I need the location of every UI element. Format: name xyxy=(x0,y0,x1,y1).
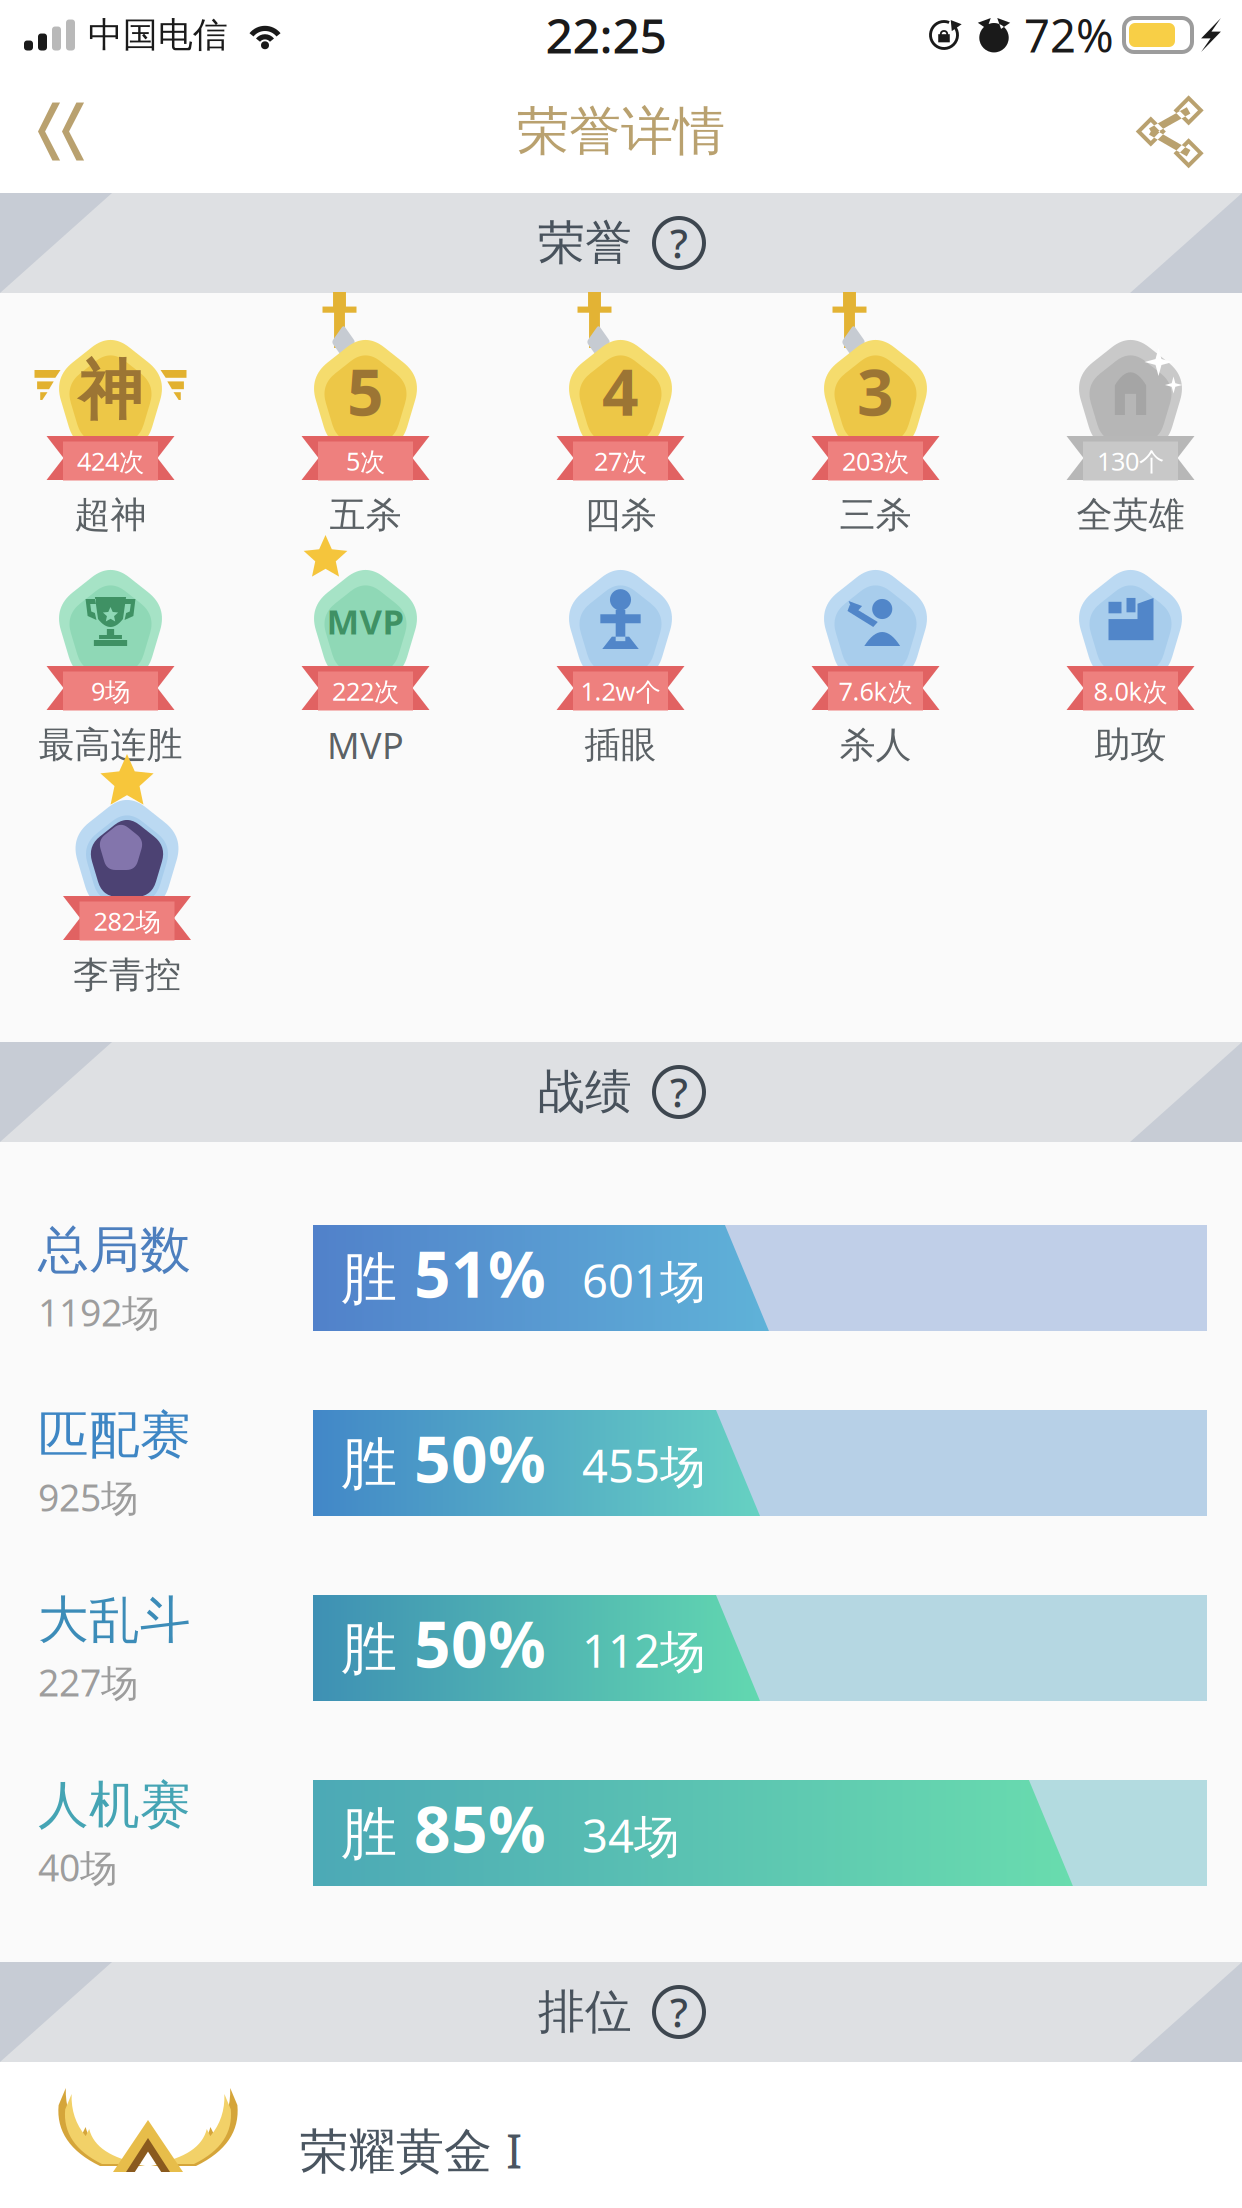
button[interactable]: 282场 xyxy=(0,753,254,983)
staticText: 51% xyxy=(397,1230,546,1315)
staticText: 1192场 xyxy=(38,1287,159,1337)
staticText: 杀人 xyxy=(839,723,911,767)
staticText: 李青控 xyxy=(73,953,181,997)
staticText: 7.6k次 xyxy=(838,674,912,708)
staticText: 全英雄 xyxy=(1076,493,1184,537)
staticText: 人机赛 xyxy=(38,1774,191,1836)
button[interactable]: 8.0k次 xyxy=(1003,523,1242,753)
staticText: 50% xyxy=(397,1415,546,1500)
staticText: 4 xyxy=(602,348,639,433)
staticText: 27次 xyxy=(594,444,647,478)
staticText: 22:25 xyxy=(545,3,666,67)
staticText: 胜 xyxy=(341,1615,397,1684)
button[interactable]: 5 xyxy=(238,293,493,523)
staticText: 85% xyxy=(397,1785,546,1870)
staticText: 1.2w个 xyxy=(580,674,660,708)
button[interactable]: 说明 xyxy=(654,218,704,268)
button[interactable]: 9场 xyxy=(0,523,238,753)
staticText: 荣誉 xyxy=(538,214,632,272)
staticText: 925场 xyxy=(38,1472,138,1522)
staticText: 72% xyxy=(1024,5,1114,65)
staticText: 超神 xyxy=(74,493,146,537)
staticText: 荣誉详情 xyxy=(517,100,725,163)
staticText: 匹配赛 xyxy=(38,1404,191,1466)
staticText: 四杀 xyxy=(584,493,656,537)
staticText: 203次 xyxy=(842,444,909,478)
staticText: 130个 xyxy=(1097,444,1164,478)
staticText: 战绩 xyxy=(538,1063,632,1121)
button[interactable]: 4 xyxy=(493,293,748,523)
staticText: 大乱斗 xyxy=(38,1589,191,1651)
button[interactable]: 说明 xyxy=(654,1067,704,1117)
staticText: 胜 xyxy=(341,1800,397,1869)
button[interactable]: 1.2w个 xyxy=(493,523,748,753)
staticText: 最高连胜 xyxy=(38,723,182,767)
staticText: 282场 xyxy=(93,904,160,938)
staticText: 三杀 xyxy=(839,493,911,537)
staticText: 荣耀黄金 I xyxy=(300,2118,522,2182)
staticText: 40场 xyxy=(38,1842,117,1892)
staticText: 排位 xyxy=(538,1983,632,2041)
staticText: 227场 xyxy=(38,1657,138,1707)
staticText: 424次 xyxy=(77,444,144,478)
staticText: 总局数 xyxy=(38,1219,191,1281)
button[interactable]: MVP xyxy=(238,523,493,753)
staticText: 112场 xyxy=(546,1620,705,1680)
button[interactable]: 7.6k次 xyxy=(748,523,1003,753)
staticText: 8.0k次 xyxy=(1093,674,1167,708)
button[interactable]: 3 xyxy=(748,293,1003,523)
staticText: MVP xyxy=(327,721,404,769)
staticText: 601场 xyxy=(546,1250,705,1310)
staticText: 胜 xyxy=(341,1245,397,1314)
button[interactable]: 分享 xyxy=(1098,70,1242,193)
staticText: 3 xyxy=(857,348,894,433)
staticText: 34场 xyxy=(546,1805,679,1865)
button[interactable]: 返回 xyxy=(0,70,122,193)
staticText: 胜 xyxy=(341,1430,397,1499)
staticText: MVP xyxy=(326,598,404,644)
staticText: 9场 xyxy=(91,674,130,708)
staticText: 中国电信 xyxy=(88,14,228,56)
staticText: 助攻 xyxy=(1094,723,1166,767)
staticText: ? xyxy=(670,1985,688,2038)
staticText: 222次 xyxy=(332,674,399,708)
button[interactable]: 说明 xyxy=(654,1987,704,2037)
staticText: 5 xyxy=(347,348,384,433)
staticText: 插眼 xyxy=(584,723,656,767)
staticText: 455场 xyxy=(546,1435,705,1495)
button[interactable]: 神 xyxy=(0,293,238,523)
staticText: 50% xyxy=(397,1600,546,1685)
button[interactable]: 130个 xyxy=(1003,293,1242,523)
staticText: ? xyxy=(670,216,688,269)
staticText: 5次 xyxy=(346,444,385,478)
staticText: 神 xyxy=(78,352,142,430)
staticText: 五杀 xyxy=(329,493,401,537)
staticText: ? xyxy=(670,1065,688,1118)
